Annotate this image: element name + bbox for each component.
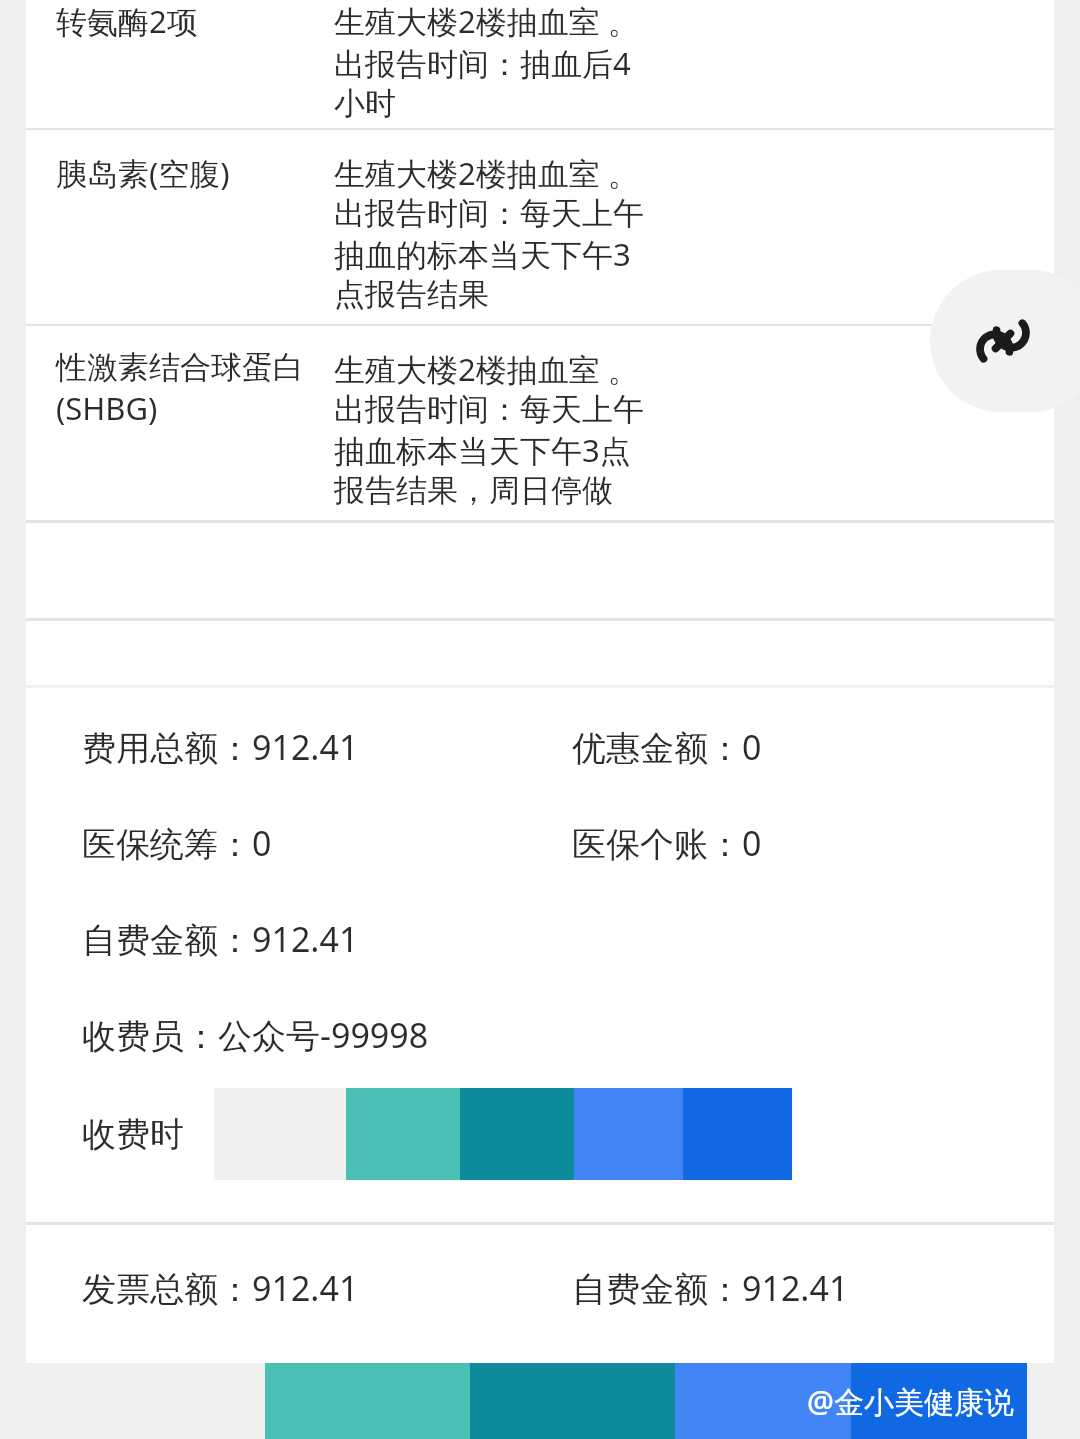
staticText: @金小美健康说 <box>807 1381 1014 1422</box>
staticText: 抽血的标本当天下午3 <box>334 233 631 275</box>
staticText: 生殖大楼2楼抽血室 。 <box>334 152 639 194</box>
staticText: 收费员：公众号-99998 <box>82 1012 572 1058</box>
button[interactable]: 胰岛素(空腹) <box>26 130 1054 324</box>
button[interactable]: Copy link <box>930 270 1080 412</box>
staticText: 生殖大楼2楼抽血室 。 <box>334 348 639 390</box>
staticText: 出报告时间：每天上午 <box>334 194 644 233</box>
staticText: 优惠金额：0 <box>572 724 762 770</box>
staticText: 生殖大楼2楼抽血室 。 <box>334 0 639 42</box>
staticText: 报告结果，周日停做 <box>334 471 613 510</box>
staticText: (SHBG) <box>56 387 158 429</box>
staticText: 性激素结合球蛋白 <box>56 348 304 387</box>
staticText: 小时 <box>334 84 396 123</box>
staticText: 医保统筹：0 <box>82 820 572 866</box>
staticText: 抽血标本当天下午3点 <box>334 429 631 471</box>
staticText: 出报告时间：每天上午 <box>334 390 644 429</box>
staticText: 费用总额：912.41 <box>82 724 572 770</box>
staticText: 胰岛素(空腹) <box>56 152 230 194</box>
staticText: 收费时 <box>82 1113 184 1156</box>
button[interactable]: 转氨酶2项 <box>26 0 1054 128</box>
staticText: 自费金额：912.41 <box>82 916 572 962</box>
button[interactable]: 性激素结合球蛋白 <box>26 326 1054 520</box>
staticText: 点报告结果 <box>334 275 489 314</box>
staticText: 医保个账：0 <box>572 820 762 866</box>
staticText: 发票总额：912.41 <box>82 1265 572 1311</box>
staticText: 转氨酶2项 <box>56 0 198 42</box>
staticText: 自费金额：912.41 <box>572 1265 849 1311</box>
staticText: 出报告时间：抽血后4 <box>334 42 631 84</box>
